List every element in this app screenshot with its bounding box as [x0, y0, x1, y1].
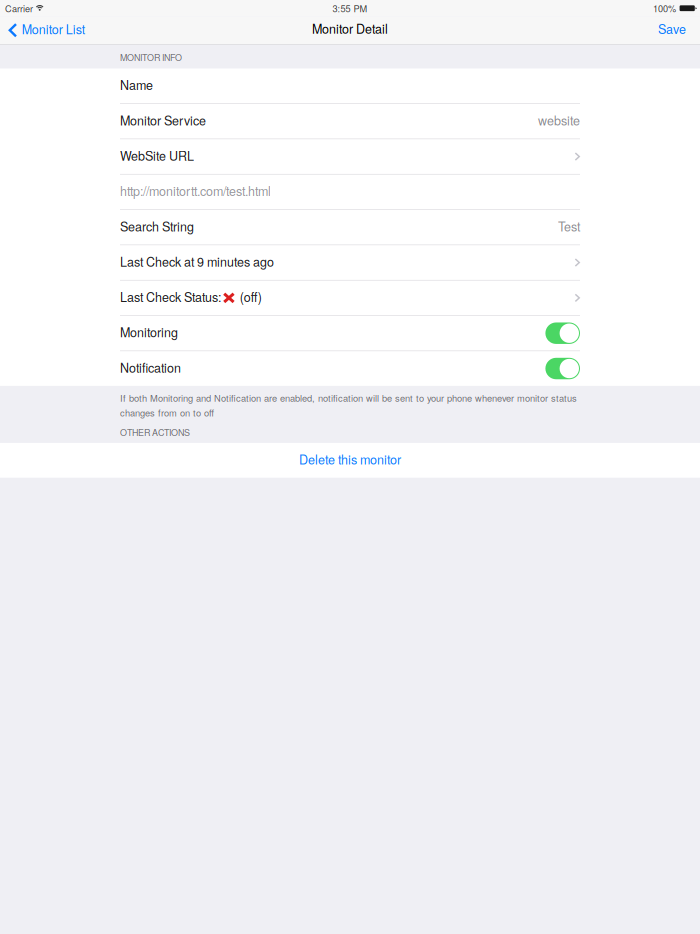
button[interactable]: WebSite URL [0, 139, 700, 174]
staticText: website [538, 111, 580, 129]
staticText: Monitor List [22, 20, 85, 38]
staticText: WebSite URL [120, 146, 194, 164]
staticText: (off) [240, 288, 262, 305]
button[interactable]: Last Check at 9 minutes ago [0, 245, 700, 280]
staticText: Save [658, 19, 686, 37]
staticText: Name [120, 76, 153, 94]
staticText: http://monitortt.com/test.html [120, 182, 271, 200]
staticText: Test [558, 217, 580, 235]
staticText: Notification [120, 358, 181, 376]
staticText: Carrier [5, 2, 33, 15]
button[interactable]: Last Check Status: [0, 280, 700, 315]
staticText: 100% [653, 2, 676, 15]
button[interactable]: Notification [545, 358, 580, 379]
staticText: Last Check Status: [120, 288, 221, 305]
staticText: Search String [120, 217, 194, 235]
staticText: If both Monitoring and Notification are … [120, 391, 577, 419]
staticText: OTHER ACTIONS [120, 426, 190, 438]
staticText: Monitor Service [120, 111, 206, 129]
button[interactable]: Save [644, 16, 700, 44]
staticText: 3:55 PM [332, 2, 367, 15]
button[interactable]: Monitor List [0, 16, 93, 44]
staticText: Monitor Detail [312, 19, 388, 37]
staticText: Last Check at 9 minutes ago [120, 252, 274, 270]
button[interactable]: Delete this monitor [0, 443, 700, 478]
staticText: Delete this monitor [299, 450, 401, 468]
button[interactable]: Monitoring [545, 322, 580, 344]
staticText: MONITOR INFO [120, 51, 182, 63]
staticText: Monitoring [120, 323, 178, 341]
